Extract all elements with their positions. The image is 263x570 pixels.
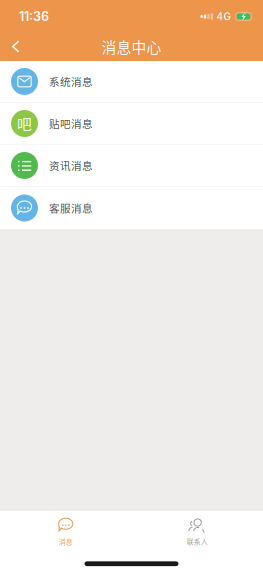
staticText: 联系人 bbox=[187, 536, 208, 546]
button[interactable]: 资讯消息 bbox=[0, 145, 263, 187]
staticText: 系统消息 bbox=[49, 74, 93, 89]
staticText: 11:36 bbox=[19, 9, 49, 24]
button[interactable]: 系统消息 bbox=[0, 61, 263, 103]
button[interactable]: 联系人 bbox=[131, 511, 263, 555]
staticText: 客服消息 bbox=[49, 200, 93, 216]
staticText: 消息中心 bbox=[101, 36, 161, 57]
staticText: 4G bbox=[216, 10, 230, 23]
button[interactable]: 消息 bbox=[0, 511, 131, 555]
button[interactable]: 客服消息 bbox=[0, 187, 263, 229]
staticText: 吧 bbox=[17, 113, 32, 134]
button[interactable]: Back bbox=[0, 32, 38, 60]
staticText: 消息 bbox=[59, 536, 73, 546]
button[interactable]: 吧 bbox=[0, 103, 263, 145]
staticText: 资讯消息 bbox=[49, 158, 93, 173]
staticText: 贴吧消息 bbox=[49, 116, 93, 131]
